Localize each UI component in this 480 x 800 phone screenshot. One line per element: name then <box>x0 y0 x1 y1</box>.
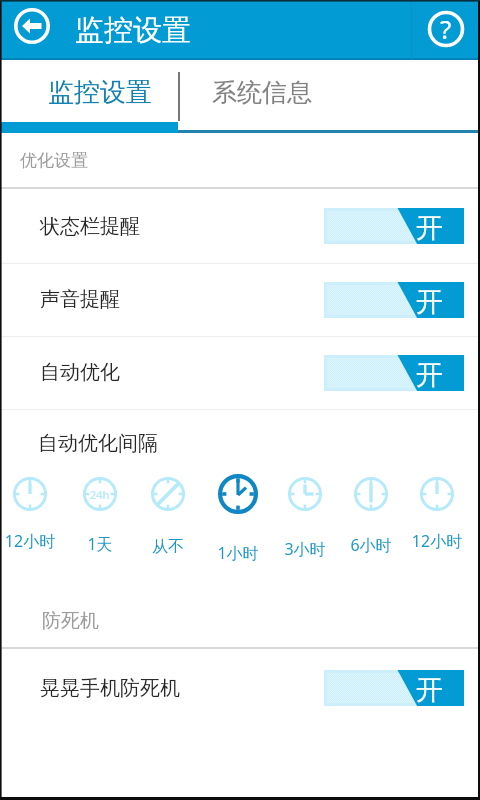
button[interactable]: 6小时 <box>347 470 395 552</box>
staticText: 防死机 <box>42 609 99 633</box>
button[interactable]: 1小时 <box>214 470 262 552</box>
button[interactable]: 晃晃手机防死机 <box>0 652 480 724</box>
staticText: 开 <box>416 358 443 392</box>
staticText: 12小时 <box>0 530 70 552</box>
button[interactable]: 3小时 <box>281 470 329 552</box>
staticText: ? <box>440 11 452 46</box>
button[interactable]: 12小时 <box>6 470 54 552</box>
button[interactable]: 状态栏提醒 <box>0 189 480 263</box>
staticText: 1天 <box>60 533 140 555</box>
staticText: 1小时 <box>198 542 278 564</box>
staticText: 系统信息 <box>212 77 312 108</box>
staticText: 状态栏提醒 <box>40 214 140 239</box>
staticText: 声音提醒 <box>40 287 120 312</box>
button[interactable]: 12小时 <box>413 470 461 552</box>
staticText: 12小时 <box>397 530 477 552</box>
staticText: 自动优化间隔 <box>38 431 158 456</box>
button[interactable]: 系统信息 <box>179 60 480 122</box>
staticText: 开 <box>416 285 443 319</box>
button[interactable]: 自动优化 <box>0 336 480 409</box>
button[interactable]: 监控设置 <box>0 60 178 122</box>
button[interactable]: 从不 <box>144 470 192 552</box>
staticText: 开 <box>416 673 443 707</box>
staticText: 监控设置 <box>48 76 152 109</box>
button[interactable]: Help <box>420 3 472 55</box>
staticText: 6小时 <box>331 534 411 556</box>
staticText: 监控设置 <box>75 12 191 49</box>
staticText: 3小时 <box>265 538 345 560</box>
staticText: 24h <box>90 487 110 502</box>
staticText: 优化设置 <box>20 150 88 171</box>
button[interactable]: 1天 <box>76 470 124 552</box>
button[interactable]: 声音提醒 <box>0 263 480 336</box>
staticText: 从不 <box>128 537 208 557</box>
staticText: 自动优化 <box>40 360 120 385</box>
staticText: 晃晃手机防死机 <box>40 676 180 701</box>
staticText: 开 <box>416 211 443 245</box>
button[interactable]: Back <box>9 3 55 49</box>
